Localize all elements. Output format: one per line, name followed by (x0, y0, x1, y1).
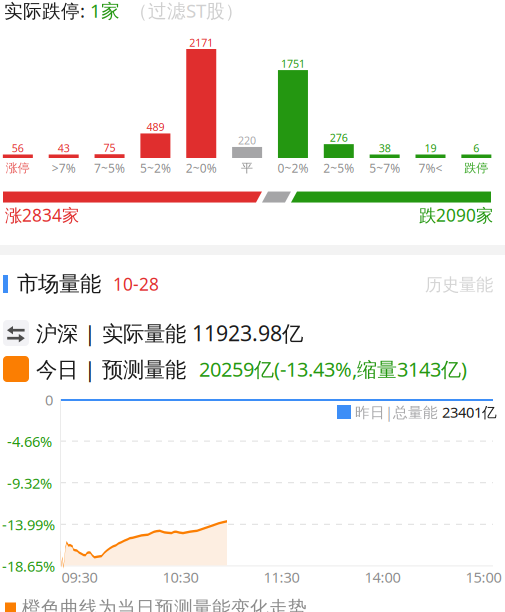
staticText: 0~2% (277, 160, 308, 176)
staticText: 20259亿(-13.43%,缩量3143亿) (199, 356, 467, 382)
staticText: 1751 (281, 56, 305, 71)
staticText: 19 (424, 141, 436, 155)
staticText: 实际跌停: (4, 0, 90, 23)
staticText: 75 (103, 141, 115, 155)
staticText: -18.65% (2, 556, 55, 576)
staticText: 2171 (189, 35, 213, 50)
staticText: 跌2090家 (419, 203, 493, 226)
staticText: -13.99% (2, 515, 55, 534)
staticText: 涨停 (6, 161, 30, 175)
staticText: 今日 | 预测量能 (36, 355, 192, 383)
staticText: 276 (330, 131, 348, 145)
staticText: 1家 (90, 0, 120, 23)
staticText: 6 (473, 141, 479, 155)
staticText: 历史量能 (425, 274, 493, 295)
staticText: 0 (45, 390, 53, 409)
staticText: 15:00 (465, 567, 501, 587)
staticText: 涨2834家 (5, 203, 79, 226)
staticText: 09:30 (61, 567, 97, 587)
staticText: 43 (58, 141, 70, 155)
staticText: -4.66% (7, 432, 52, 451)
staticText: 昨日|总量能 (355, 402, 438, 422)
staticText: 7%< (418, 160, 442, 176)
staticText: 2~0% (186, 160, 217, 176)
staticText: （过滤ST股） (129, 0, 244, 23)
staticText: 沪深 | 实际量能 11923.98亿 (36, 319, 303, 347)
staticText: 5~2% (140, 160, 171, 176)
button[interactable]: 历史量能 (425, 274, 493, 295)
staticText: 10-28 (113, 272, 159, 295)
staticText: 平 (241, 161, 253, 175)
staticText: 11:30 (263, 567, 299, 587)
staticText: 2~5% (323, 160, 354, 176)
staticText: 7~5% (94, 160, 125, 176)
staticText: 跌停 (464, 161, 488, 175)
staticText: 市场量能 (17, 271, 101, 297)
staticText: 10:30 (162, 567, 198, 587)
staticText: 220 (238, 133, 256, 148)
staticText: 14:00 (364, 567, 400, 587)
staticText: -9.32% (7, 473, 52, 493)
staticText: >7% (52, 160, 76, 176)
staticText: 38 (379, 141, 391, 155)
staticText: 489 (146, 120, 164, 134)
staticText: 5~7% (369, 160, 400, 176)
staticText: 23401亿 (442, 402, 497, 422)
staticText: 橙色曲线为当日预测量能变化走势 (22, 596, 307, 612)
staticText: 56 (12, 141, 24, 155)
